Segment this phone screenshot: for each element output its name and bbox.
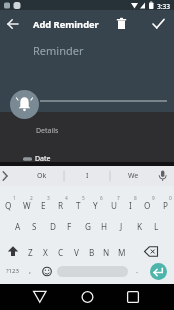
staticText: We xyxy=(128,171,139,181)
staticText: 4 xyxy=(65,195,68,202)
staticText: 1 xyxy=(13,195,16,202)
button[interactable]: U xyxy=(105,196,122,214)
staticText: M xyxy=(118,247,126,258)
staticText: E xyxy=(41,200,46,211)
button[interactable]: T xyxy=(70,196,87,214)
staticText: L xyxy=(154,221,159,232)
button[interactable] xyxy=(74,285,101,309)
button[interactable]: E xyxy=(35,196,52,214)
staticText: Add Reminder xyxy=(33,18,99,31)
staticText: . xyxy=(136,265,139,275)
staticText: S xyxy=(32,221,37,232)
button[interactable] xyxy=(28,40,168,102)
staticText: K xyxy=(137,221,143,232)
button[interactable] xyxy=(150,263,167,280)
staticText: C xyxy=(58,247,64,258)
staticText: X xyxy=(43,247,48,258)
button[interactable]: X xyxy=(38,243,53,261)
staticText: W xyxy=(23,200,31,211)
staticText: Y xyxy=(93,200,98,211)
button[interactable]: H xyxy=(96,217,113,235)
staticText: I xyxy=(86,171,89,181)
button[interactable]: P xyxy=(157,196,174,214)
button[interactable]: G xyxy=(79,217,96,235)
staticText: 8 xyxy=(134,195,137,202)
button[interactable]: I xyxy=(122,196,139,214)
staticText: D xyxy=(50,221,56,232)
staticText: 3:33 xyxy=(157,2,171,11)
button[interactable]: K xyxy=(131,217,148,235)
button[interactable]: We xyxy=(113,169,153,183)
button[interactable] xyxy=(111,13,131,35)
button[interactable]: Ok xyxy=(22,169,62,183)
staticText: ?123 xyxy=(6,267,19,275)
staticText: P xyxy=(163,200,168,211)
staticText: Z xyxy=(28,247,33,258)
staticText: F xyxy=(67,221,72,232)
staticText: U xyxy=(111,200,117,211)
button[interactable]: W xyxy=(18,196,35,214)
button[interactable] xyxy=(0,120,174,142)
staticText: O xyxy=(144,200,151,211)
button[interactable]: , xyxy=(25,262,35,278)
button[interactable]: O xyxy=(139,196,156,214)
button[interactable]: ?123 xyxy=(2,263,22,279)
button[interactable]: C xyxy=(53,243,68,261)
staticText: I xyxy=(129,200,132,211)
button[interactable] xyxy=(149,13,169,35)
button[interactable] xyxy=(3,13,23,35)
staticText: 3 xyxy=(47,195,50,202)
button[interactable] xyxy=(120,285,147,309)
button[interactable]: Y xyxy=(87,196,104,214)
staticText: V xyxy=(74,247,79,258)
staticText: N xyxy=(103,247,110,258)
button[interactable]: F xyxy=(61,217,78,235)
staticText: Date xyxy=(35,154,51,164)
staticText: Reminder xyxy=(33,43,84,58)
staticText: 7 xyxy=(117,195,120,202)
staticText: G xyxy=(85,221,91,232)
staticText: Q xyxy=(5,200,12,211)
staticText: B xyxy=(89,247,95,258)
button[interactable]: B xyxy=(84,243,99,261)
button[interactable]: Z xyxy=(23,243,38,261)
staticText: , xyxy=(29,265,32,275)
staticText: Ok xyxy=(37,171,47,181)
button[interactable]: R xyxy=(52,196,69,214)
staticText: A xyxy=(15,221,21,232)
button[interactable]: I xyxy=(67,169,107,183)
staticText: 9 xyxy=(152,195,155,202)
staticText: T xyxy=(76,200,81,211)
staticText: 2 xyxy=(30,195,33,202)
button[interactable]: L xyxy=(148,217,165,235)
staticText: 0 xyxy=(169,195,172,202)
staticText: H xyxy=(101,221,108,232)
button[interactable]: V xyxy=(69,243,84,261)
button[interactable]: Q xyxy=(0,196,17,214)
button[interactable]: S xyxy=(26,217,43,235)
button[interactable]: J xyxy=(113,217,130,235)
button[interactable] xyxy=(10,90,39,119)
button[interactable] xyxy=(57,266,128,277)
button[interactable]: A xyxy=(9,217,26,235)
staticText: Details xyxy=(36,126,59,136)
button[interactable] xyxy=(26,285,53,309)
staticText: 5 xyxy=(82,195,85,202)
button[interactable]: N xyxy=(99,243,114,261)
button[interactable]: . xyxy=(132,262,142,278)
staticText: 6 xyxy=(100,195,103,202)
button[interactable]: D xyxy=(44,217,61,235)
staticText: R xyxy=(58,200,64,211)
staticText: J xyxy=(120,221,123,232)
button[interactable] xyxy=(0,146,174,162)
button[interactable]: M xyxy=(114,243,129,261)
